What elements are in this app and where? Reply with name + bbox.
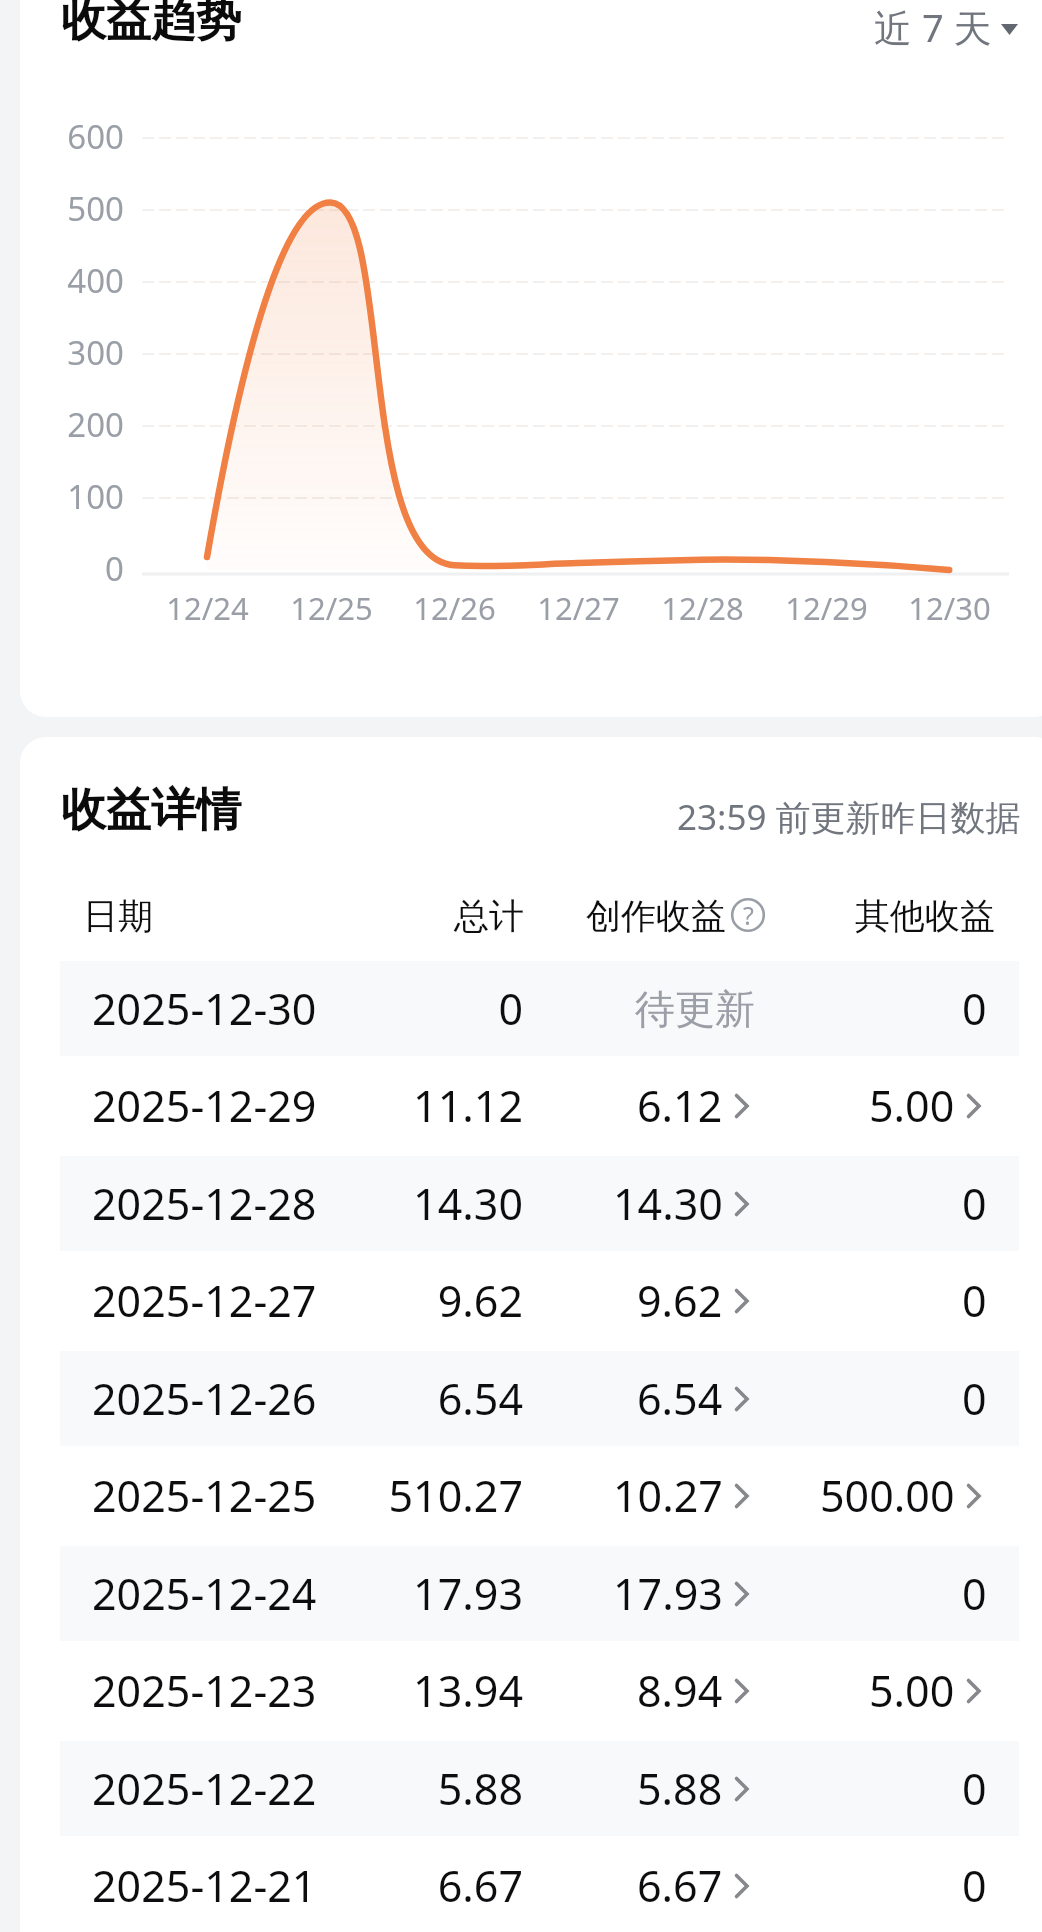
staticText: 2025-12-22 xyxy=(92,1759,317,1818)
staticText: 5.00 xyxy=(869,1076,955,1135)
staticText: 14.30 xyxy=(613,1174,723,1233)
staticText: ? xyxy=(743,898,754,932)
button[interactable]: 6.67 xyxy=(560,1838,755,1932)
button[interactable]: 6.12 xyxy=(560,1058,755,1153)
button[interactable]: 2025-12-30 xyxy=(60,961,1019,1056)
staticText: 0 xyxy=(962,979,987,1038)
staticText: 0 xyxy=(962,1174,987,1233)
staticText: 510.27 xyxy=(388,1466,523,1525)
staticText: 2025-12-28 xyxy=(92,1174,317,1233)
staticText: 2025-12-30 xyxy=(92,979,317,1038)
staticText: 总计 xyxy=(454,894,524,938)
staticText: 6.67 xyxy=(437,1856,523,1915)
staticText: 12/30 xyxy=(908,587,991,629)
staticText: 5.88 xyxy=(637,1759,723,1818)
staticText: 2025-12-29 xyxy=(92,1076,317,1135)
button[interactable]: 9.62 xyxy=(560,1253,755,1348)
staticText: 2025-12-23 xyxy=(92,1661,317,1720)
staticText: 5.88 xyxy=(437,1759,523,1818)
staticText: 5.00 xyxy=(869,1661,955,1720)
button[interactable]: 创作收益说明 xyxy=(731,898,765,932)
staticText: 创作收益 xyxy=(586,894,726,938)
staticText: 0 xyxy=(105,546,124,591)
staticText: 17.93 xyxy=(613,1564,723,1623)
button[interactable]: 2025-12-21 xyxy=(60,1838,1019,1932)
staticText: 23:59 前更新昨日数据 xyxy=(677,793,1021,841)
staticText: 13.94 xyxy=(413,1661,523,1720)
staticText: 500.00 xyxy=(820,1466,955,1525)
staticText: 2025-12-25 xyxy=(92,1466,317,1525)
button[interactable]: 5.88 xyxy=(560,1741,755,1836)
staticText: 0 xyxy=(962,1759,987,1818)
button[interactable]: 10.27 xyxy=(560,1448,755,1543)
staticText: 600 xyxy=(67,114,124,159)
staticText: 9.62 xyxy=(637,1271,723,1330)
staticText: 8.94 xyxy=(637,1661,723,1720)
staticText: 9.62 xyxy=(437,1271,523,1330)
staticText: 12/24 xyxy=(166,587,249,629)
staticText: 0 xyxy=(962,1564,987,1623)
button[interactable]: 2025-12-28 xyxy=(60,1156,1019,1251)
button[interactable]: 6.54 xyxy=(560,1351,755,1446)
staticText: 6.54 xyxy=(637,1369,723,1428)
staticText: 10.27 xyxy=(613,1466,723,1525)
staticText: 200 xyxy=(67,402,124,447)
staticText: 6.12 xyxy=(637,1076,723,1135)
staticText: 收益详情 xyxy=(61,782,241,839)
staticText: 其他收益 xyxy=(855,894,995,938)
staticText: 2025-12-26 xyxy=(92,1369,317,1428)
button[interactable]: 500.00 xyxy=(790,1448,987,1543)
staticText: 400 xyxy=(67,258,124,303)
staticText: 12/27 xyxy=(537,587,620,629)
button[interactable]: 5.00 xyxy=(790,1058,987,1153)
staticText: 日期 xyxy=(83,894,153,938)
button[interactable]: 2025-12-27 xyxy=(60,1253,1019,1348)
staticText: 近 7 天 xyxy=(874,1,992,53)
staticText: 2025-12-24 xyxy=(92,1564,317,1623)
button[interactable]: 2025-12-26 xyxy=(60,1351,1019,1446)
staticText: 17.93 xyxy=(413,1564,523,1623)
button[interactable]: 2025-12-25 xyxy=(60,1448,1019,1543)
staticText: 12/26 xyxy=(413,587,496,629)
staticText: 收益趋势 xyxy=(61,0,241,49)
button[interactable]: 近 7 天 xyxy=(874,1,1018,53)
button[interactable]: 5.00 xyxy=(790,1643,987,1738)
staticText: 0 xyxy=(962,1856,987,1915)
button[interactable]: 17.93 xyxy=(560,1546,755,1641)
staticText: 0 xyxy=(962,1271,987,1330)
staticText: 11.12 xyxy=(413,1076,523,1135)
staticText: 2025-12-27 xyxy=(92,1271,317,1330)
staticText: 100 xyxy=(67,474,124,519)
staticText: 12/28 xyxy=(661,587,744,629)
staticText: 0 xyxy=(962,1369,987,1428)
button[interactable]: 2025-12-24 xyxy=(60,1546,1019,1641)
button[interactable]: 2025-12-23 xyxy=(60,1643,1019,1738)
button[interactable]: 8.94 xyxy=(560,1643,755,1738)
button[interactable]: 2025-12-22 xyxy=(60,1741,1019,1836)
staticText: 6.54 xyxy=(437,1369,523,1428)
staticText: 500 xyxy=(67,186,124,231)
staticText: 12/29 xyxy=(785,587,868,629)
staticText: 6.67 xyxy=(637,1856,723,1915)
staticText: 12/25 xyxy=(290,587,373,629)
staticText: 300 xyxy=(67,330,124,375)
button[interactable]: 14.30 xyxy=(560,1156,755,1251)
staticText: 2025-12-21 xyxy=(92,1856,317,1915)
button[interactable]: 2025-12-29 xyxy=(60,1058,1019,1153)
staticText: 0 xyxy=(498,979,523,1038)
staticText: 待更新 xyxy=(635,984,755,1034)
staticText: 14.30 xyxy=(413,1174,523,1233)
